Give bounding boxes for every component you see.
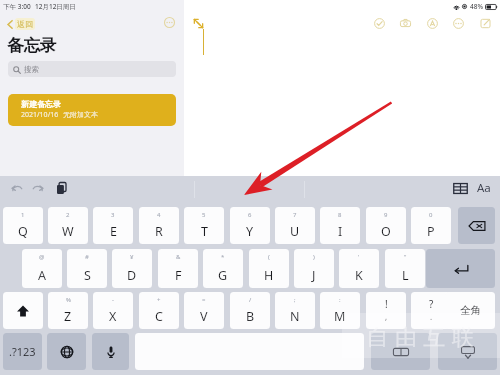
- staticText: 3: [111, 211, 115, 219]
- staticText: .?123: [9, 344, 36, 359]
- button[interactable]: 新建备忘录: [8, 94, 176, 126]
- staticText: K: [355, 267, 363, 284]
- button[interactable]: globe: [47, 333, 86, 370]
- button[interactable]: %: [48, 292, 88, 329]
- staticText: (: [268, 253, 270, 261]
- button[interactable]: kbsplit: [371, 333, 430, 370]
- button[interactable]: 粘贴: [54, 181, 69, 196]
- staticText: 8: [338, 211, 342, 219]
- staticText: Y: [246, 223, 254, 240]
- button[interactable]: =: [184, 292, 224, 329]
- button[interactable]: +: [139, 292, 179, 329]
- staticText: Aa: [477, 180, 491, 196]
- staticText: 9: [384, 211, 388, 219]
- staticText: @: [39, 253, 45, 261]
- staticText: B: [246, 308, 255, 325]
- staticText: J: [312, 267, 316, 284]
- staticText: A: [38, 267, 46, 284]
- button[interactable]: 9: [366, 207, 406, 244]
- staticText: I: [338, 223, 343, 240]
- staticText: ?: [429, 297, 434, 311]
- button[interactable]: :: [320, 292, 360, 329]
- staticText: 1: [21, 211, 25, 219]
- button[interactable]: 重做: [31, 182, 45, 196]
- button[interactable]: 更多: [162, 15, 176, 29]
- staticText: C: [155, 308, 163, 325]
- button[interactable]: 全角: [445, 292, 495, 329]
- button[interactable]: 标记: [425, 16, 440, 31]
- staticText: Q: [18, 223, 28, 240]
- staticText: ;: [294, 296, 296, 304]
- button[interactable]: 表格: [453, 181, 468, 196]
- staticText: 2: [66, 211, 70, 219]
- button[interactable]: ': [339, 249, 379, 288]
- button[interactable]: 3: [93, 207, 133, 244]
- staticText: 6: [248, 211, 252, 219]
- staticText: F: [175, 267, 182, 284]
- button[interactable]: 展开: [192, 17, 205, 30]
- button[interactable]: 撤销: [10, 182, 24, 196]
- staticText: O: [381, 223, 391, 240]
- button[interactable]: 5: [184, 207, 224, 244]
- staticText: ": [404, 253, 407, 261]
- button[interactable]: *: [203, 249, 243, 288]
- button[interactable]: 相机: [398, 16, 413, 31]
- button[interactable]: /: [230, 292, 270, 329]
- button[interactable]: .?123: [3, 333, 42, 370]
- button[interactable]: &: [158, 249, 198, 288]
- staticText: 7: [293, 211, 297, 219]
- button[interactable]: shift: [3, 292, 43, 329]
- staticText: !: [385, 297, 388, 311]
- button[interactable]: !: [366, 292, 406, 329]
- button[interactable]: ?: [411, 292, 451, 329]
- staticText: R: [155, 223, 163, 240]
- staticText: 无附加文本: [63, 110, 98, 119]
- button[interactable]: kbdown: [438, 333, 497, 370]
- staticText: -: [112, 296, 114, 304]
- staticText: 0: [429, 211, 433, 219]
- button[interactable]: 4: [139, 207, 179, 244]
- button[interactable]: 7: [275, 207, 315, 244]
- staticText: S: [84, 267, 91, 284]
- button[interactable]: @: [22, 249, 62, 288]
- button[interactable]: 6: [230, 207, 270, 244]
- button[interactable]: 返回: [6, 17, 36, 31]
- button[interactable]: return: [426, 249, 495, 288]
- button[interactable]: 8: [320, 207, 360, 244]
- staticText: V: [200, 308, 208, 325]
- staticText: /: [249, 296, 252, 304]
- button[interactable]: 更多: [451, 16, 466, 31]
- staticText: E: [110, 223, 117, 240]
- button[interactable]: 2: [48, 207, 88, 244]
- staticText: P: [427, 223, 435, 240]
- button[interactable]: ¥: [112, 249, 152, 288]
- staticText: M: [334, 308, 346, 325]
- button[interactable]: 0: [411, 207, 451, 244]
- staticText: 备忘录: [7, 35, 57, 56]
- staticText: 搜索: [24, 65, 39, 74]
- staticText: +: [157, 296, 161, 304]
- staticText: 全角: [460, 304, 481, 317]
- button[interactable]: -: [93, 292, 133, 329]
- button[interactable]: Aa: [477, 180, 491, 196]
- staticText: 新建备忘录: [21, 99, 61, 109]
- button[interactable]: 新建: [478, 16, 493, 31]
- staticText: ,: [385, 311, 388, 322]
- button[interactable]: ;: [275, 292, 315, 329]
- button[interactable]: (: [249, 249, 289, 288]
- button[interactable]: 1: [3, 207, 43, 244]
- button[interactable]: ": [385, 249, 425, 288]
- button[interactable]: 完成: [372, 16, 387, 31]
- staticText: H: [264, 267, 274, 284]
- button[interactable]: ): [294, 249, 334, 288]
- button[interactable]: backspace: [458, 207, 495, 244]
- button[interactable]: #: [67, 249, 107, 288]
- staticText: L: [402, 267, 409, 284]
- staticText: Z: [64, 308, 72, 325]
- staticText: .: [430, 311, 433, 322]
- staticText: =: [202, 296, 206, 304]
- staticText: ': [358, 253, 360, 261]
- button[interactable]: mic: [92, 333, 129, 370]
- button[interactable]: 搜索: [8, 61, 176, 77]
